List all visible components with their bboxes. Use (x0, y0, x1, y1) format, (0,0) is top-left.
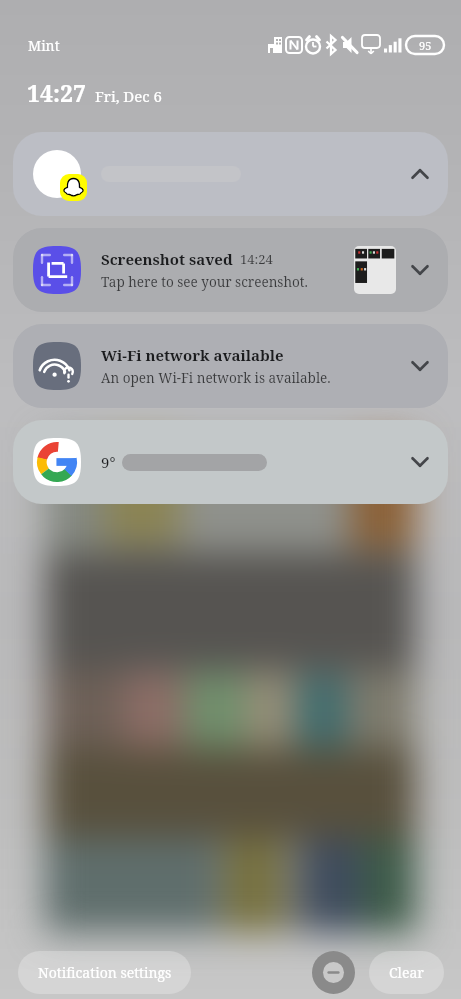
button[interactable]: Wi-Fi network available (13, 324, 448, 408)
button[interactable]: Notification settings (18, 951, 191, 994)
button[interactable]: Do not disturb (312, 951, 355, 994)
staticText: 95 (419, 38, 432, 53)
button[interactable]: Expand (400, 442, 440, 482)
staticText: 14:24 (240, 250, 273, 268)
staticText: Notification settings (38, 963, 172, 982)
staticText: Fri, Dec 6 (95, 86, 162, 106)
staticText: 9° (101, 452, 116, 472)
button[interactable]: Expand (400, 346, 440, 386)
button[interactable]: Collapse (400, 154, 440, 194)
button[interactable]: Expand (400, 250, 440, 290)
button[interactable]: Screenshot saved (13, 228, 448, 312)
button[interactable]: Clear (369, 951, 444, 994)
staticText: Tap here to see your screenshot. (101, 273, 308, 291)
staticText: Clear (389, 963, 424, 982)
staticText: Wi-Fi network available (101, 345, 284, 365)
staticText: An open Wi-Fi network is available. (101, 369, 331, 387)
staticText: 14:27 (27, 77, 86, 108)
button[interactable]: 9° (13, 420, 448, 504)
button[interactable]: Collapse (13, 132, 448, 216)
staticText: Screenshot saved (101, 249, 233, 269)
staticText: Mint (28, 36, 60, 55)
